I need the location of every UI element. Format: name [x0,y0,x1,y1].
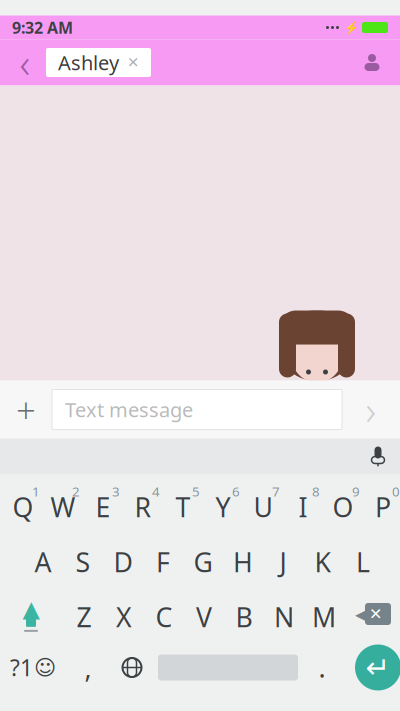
button[interactable]: Ashley [46,48,151,77]
button[interactable]: Add attachment [0,380,52,438]
button[interactable]: L [343,535,383,582]
button[interactable]: K [303,535,343,582]
staticText: E [95,489,110,525]
button[interactable]: C [144,590,184,637]
staticText: C [155,599,172,635]
staticText: U [253,489,272,525]
staticText: 9 [352,482,360,500]
button[interactable]: N [264,590,304,637]
button[interactable]: Z [64,590,104,637]
staticText: ☺ [34,655,56,680]
staticText: Y [215,489,230,525]
staticText: P [375,489,391,525]
button[interactable]: 2 [43,480,83,527]
button[interactable]: Symbols and emoji [0,639,66,695]
staticText: ↵ [365,651,390,684]
button[interactable]: D [103,535,143,582]
staticText: . [318,650,325,685]
button[interactable]: Backspace [348,590,398,637]
button[interactable]: Space [154,639,302,695]
staticText: 0 [392,482,400,500]
staticText: 1 [32,482,40,500]
staticText: S [75,544,90,580]
button[interactable]: G [183,535,223,582]
button[interactable]: 4 [123,480,163,527]
staticText: ▲ [22,596,39,622]
button[interactable]: A [23,535,63,582]
staticText: + [16,386,36,432]
staticText: 2 [72,482,80,500]
button[interactable]: Shift [8,590,54,637]
staticText: A [34,544,51,580]
staticText: V [196,599,212,635]
staticText: ✕ [369,605,382,623]
button[interactable]: M [304,590,344,637]
staticText: 3 [112,482,120,500]
button[interactable]: 6 [203,480,243,527]
staticText: ◀ [355,603,370,625]
staticText: 7 [272,482,280,500]
staticText: F [156,544,170,580]
staticText: B [235,599,252,635]
staticText: 5 [192,482,200,500]
staticText: ⚡ [344,21,359,34]
button[interactable]: 1 [3,480,43,527]
staticText: D [113,544,132,580]
staticText: N [274,599,294,635]
button[interactable]: Enter [350,639,400,695]
button[interactable]: 8 [283,480,323,527]
button[interactable]: V [184,590,224,637]
button[interactable]: Contact info [352,39,392,85]
staticText: ‹ [19,36,30,89]
staticText: L [356,544,370,580]
staticText: , [84,650,91,685]
staticText: T [175,489,190,525]
staticText: ?1 [10,652,33,682]
button[interactable]: 9 [323,480,363,527]
button[interactable]: Voice input [356,438,400,474]
staticText: R [134,489,151,525]
staticText: › [365,383,376,436]
staticText: 6 [232,482,240,500]
staticText: I [298,489,307,525]
button[interactable]: 5 [163,480,203,527]
button[interactable]: , [66,639,110,695]
staticText: X [116,599,132,635]
staticText: O [332,489,353,525]
staticText: J [279,544,286,580]
button[interactable]: F [143,535,183,582]
button[interactable]: X [104,590,144,637]
button[interactable]: 0 [363,480,400,527]
button[interactable]: Back [4,39,46,85]
button[interactable]: J [263,535,303,582]
staticText: K [314,544,331,580]
button[interactable]: H [223,535,263,582]
staticText: Q [12,489,33,525]
button[interactable]: Text message [52,389,342,429]
staticText: ✕ [127,54,139,71]
button[interactable]: Send [342,380,400,438]
button[interactable]: 3 [83,480,123,527]
staticText: W [50,489,75,525]
staticText: 8 [312,482,320,500]
staticText: M [312,599,336,635]
staticText: Z [76,599,91,635]
button[interactable]: 7 [243,480,283,527]
staticText: 4 [152,482,160,500]
staticText: G [193,544,212,580]
staticText: 9:32 AM [12,17,73,38]
staticText: Text message [65,396,193,423]
staticText: H [233,544,253,580]
button[interactable]: . [302,639,342,695]
staticText: Ashley [58,49,119,76]
button[interactable]: S [63,535,103,582]
button[interactable]: Change language [110,639,154,695]
button[interactable]: B [224,590,264,637]
